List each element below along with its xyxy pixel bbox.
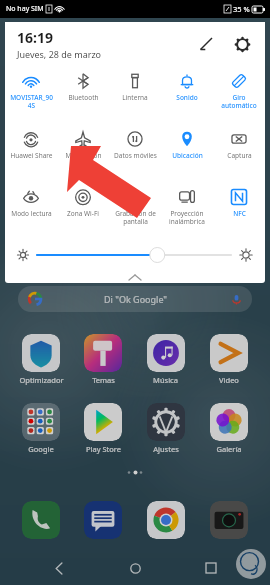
button[interactable]: Huawei Share <box>5 124 57 182</box>
staticText: Play Store <box>86 444 121 454</box>
staticText: Proyección inalámbrica <box>169 209 205 226</box>
staticText: Galería <box>216 444 242 454</box>
staticText: Bluetooth <box>68 93 99 102</box>
button[interactable] <box>10 501 72 539</box>
button[interactable]: Atrás <box>42 551 76 585</box>
staticText: Di "Ok Google" <box>104 293 168 305</box>
staticText: Sonido <box>176 93 198 102</box>
staticText: Grabación de pantalla <box>115 209 156 226</box>
staticText: Datos móviles <box>114 151 157 160</box>
button[interactable]: Zona Wi-Fi <box>57 182 109 240</box>
button[interactable] <box>5 270 265 283</box>
staticText: 35 % <box>233 4 250 14</box>
staticText: Jueves, 28 de marzo <box>17 48 102 60</box>
staticText: Ubicación <box>172 151 203 160</box>
button[interactable]: Galería <box>197 403 260 454</box>
button[interactable]: Editar <box>193 31 219 57</box>
button[interactable] <box>37 244 231 266</box>
button[interactable]: Ubicación <box>161 124 213 182</box>
staticText: Linterna <box>122 93 148 102</box>
button[interactable]: Giro automático <box>213 66 265 124</box>
button[interactable]: Proyección inalámbrica <box>161 182 213 240</box>
button[interactable]: Bluetooth <box>57 66 109 124</box>
staticText: No hay SIM <box>6 4 44 14</box>
button[interactable]: Inicio <box>118 551 152 585</box>
staticText: 16:19 <box>17 28 53 47</box>
button[interactable]: Ajustes <box>229 31 255 57</box>
button[interactable]: Temas <box>72 334 134 385</box>
staticText: Zona Wi-Fi <box>67 209 99 218</box>
button[interactable]: Modo avión <box>57 124 109 182</box>
staticText: MOVISTAR_90 4S <box>10 93 53 110</box>
button[interactable]: Sonido <box>161 66 213 124</box>
button[interactable] <box>134 501 197 539</box>
button[interactable]: Grabación de pantalla <box>109 182 161 240</box>
staticText: Modo avión <box>65 151 102 160</box>
staticText: Música <box>153 375 178 385</box>
staticText: Captura <box>227 151 252 160</box>
button[interactable]: NFC <box>213 182 265 240</box>
button[interactable]: MOVISTAR_90 4S <box>5 66 57 124</box>
staticText: Giro automático <box>221 93 257 110</box>
button[interactable] <box>197 501 260 539</box>
button[interactable]: Captura <box>213 124 265 182</box>
staticText: Google <box>28 444 54 454</box>
button[interactable]: Play Store <box>72 403 134 454</box>
button[interactable]: Música <box>134 334 197 385</box>
staticText: Ajustes <box>153 444 179 454</box>
button[interactable] <box>72 501 134 539</box>
button[interactable]: Recientes <box>194 551 228 585</box>
staticText: Video <box>219 375 239 385</box>
button[interactable]: Google <box>10 403 72 454</box>
button[interactable]: Video <box>197 334 260 385</box>
staticText: Huawei Share <box>10 151 53 160</box>
button[interactable]: Optimizador <box>10 334 72 385</box>
staticText: Modo lectura <box>11 209 52 218</box>
button[interactable]: Linterna <box>109 66 161 124</box>
staticText: NFC <box>233 209 246 218</box>
button[interactable]: Di "Ok Google" <box>18 286 252 312</box>
button[interactable]: Datos móviles <box>109 124 161 182</box>
button[interactable]: Modo lectura <box>5 182 57 240</box>
button[interactable]: Ajustes <box>134 403 197 454</box>
staticText: Temas <box>92 375 115 385</box>
staticText: Optimizador <box>19 375 64 385</box>
